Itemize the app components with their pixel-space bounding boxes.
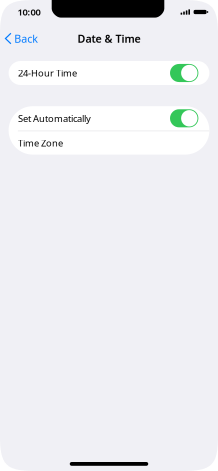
staticText: Back — [14, 31, 38, 46]
button[interactable]: Toggle — [170, 64, 198, 82]
button[interactable]: Time Zone — [9, 131, 209, 155]
button[interactable]: Toggle — [170, 109, 198, 127]
button[interactable]: Back — [0, 27, 44, 50]
staticText: Date & Time — [77, 31, 140, 46]
staticText: Set Automatically — [18, 112, 91, 124]
button[interactable]: Set Automatically — [9, 106, 209, 130]
staticText: Time Zone — [18, 137, 63, 149]
staticText: 24-Hour Time — [18, 67, 77, 79]
button[interactable]: 24-Hour Time — [9, 61, 209, 85]
staticText: 10:00 — [17, 6, 40, 18]
